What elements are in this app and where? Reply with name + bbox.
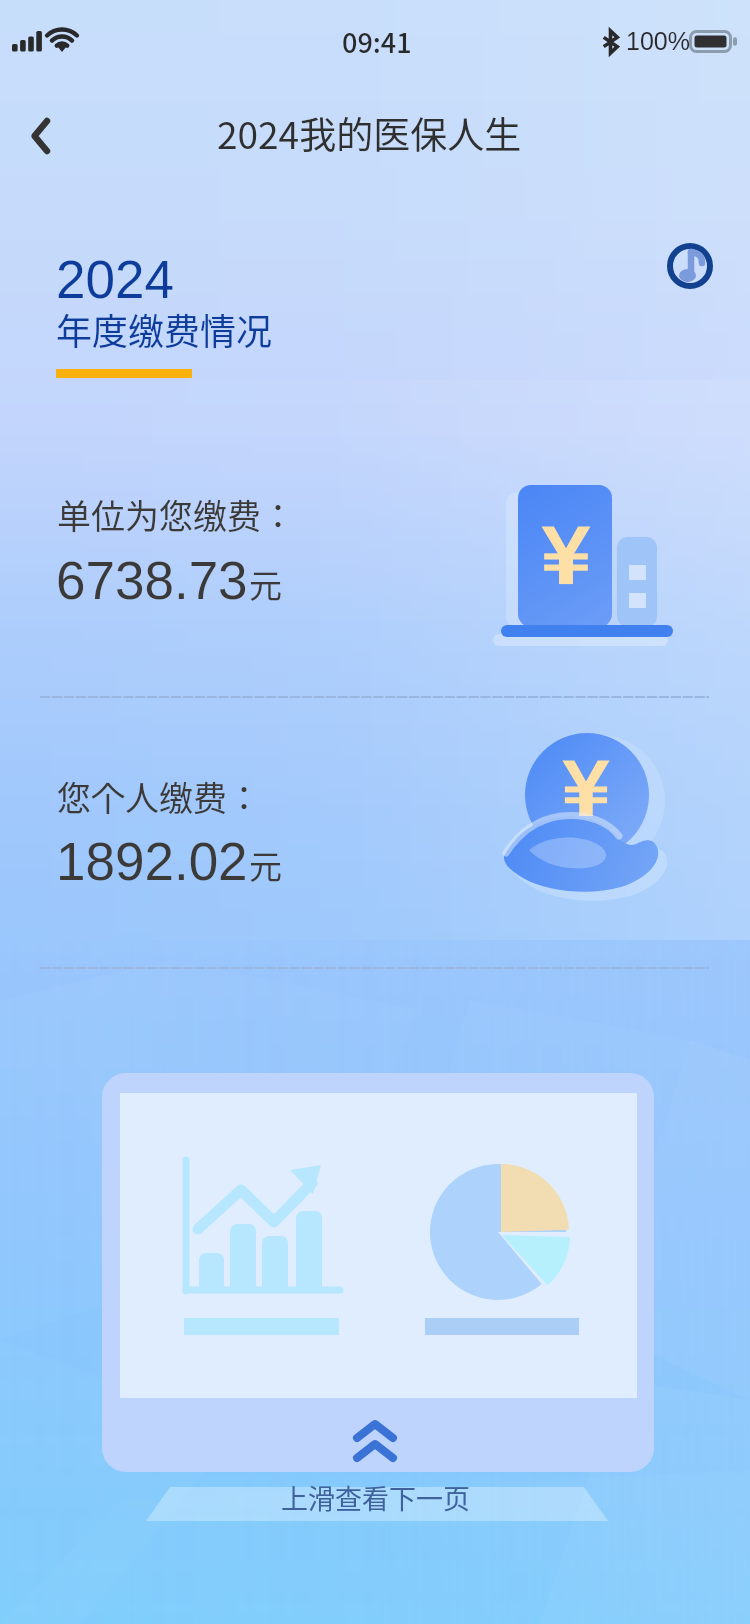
staticText: 上滑查看下一页 [281, 1478, 470, 1517]
staticText: 单位为您缴费： [57, 490, 295, 539]
staticText: 元 [249, 560, 282, 608]
staticText: 09:41 [342, 22, 412, 61]
button[interactable]: Music [661, 237, 719, 295]
staticText: 100% [626, 27, 690, 55]
button[interactable]: Swipe up for next page [320, 1403, 430, 1479]
staticText: 2024我的医保人生 [217, 106, 522, 160]
staticText: 6738.73 [56, 551, 248, 610]
staticText: 您个人缴费： [57, 772, 261, 821]
staticText: 1892.02 [56, 832, 248, 891]
button[interactable]: Back [8, 104, 72, 168]
staticText: 元 [249, 841, 282, 889]
staticText: 2024 [56, 250, 174, 309]
staticText: 年度缴费情况 [56, 303, 273, 355]
